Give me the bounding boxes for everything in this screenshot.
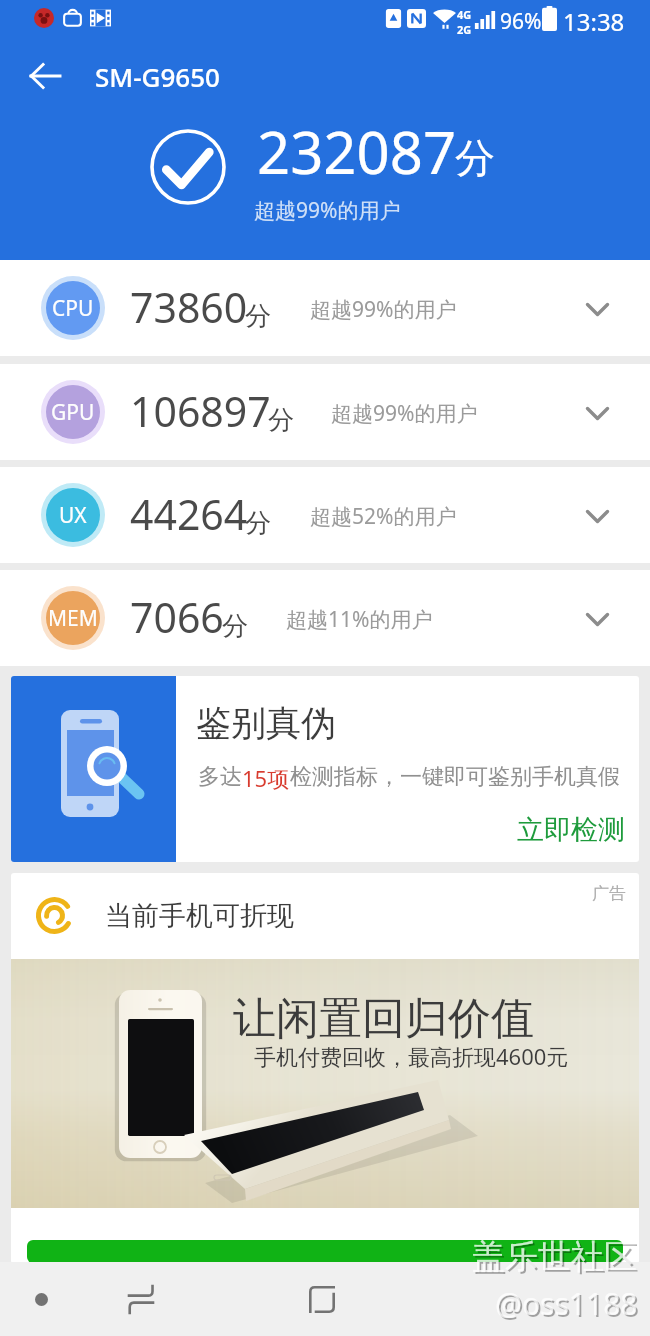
staticText: 多达 [198,763,242,791]
staticText: CPU [52,294,94,323]
button[interactable]: Recent apps [11,1269,71,1329]
staticText: 15项 [242,763,290,793]
staticText: 73860 [130,279,248,335]
staticText: 44264 [130,486,248,542]
staticText: MEM [48,604,98,633]
staticText: 232087 [257,112,457,191]
button[interactable]: Home [292,1269,352,1329]
staticText: 2G [457,22,472,37]
staticText: 分 [268,404,294,437]
staticText: 7066 [130,589,224,645]
staticText: 当前手机可折现 [105,899,294,933]
staticText: 立即检测 [517,813,625,847]
staticText: 4G [457,7,472,22]
staticText: 分 [245,507,271,540]
staticText: 13:38 [563,5,625,38]
staticText: 检测指标，一键即可鉴别手机真假 [290,763,620,791]
button[interactable]: GPU [0,364,650,460]
staticText: 超越99%的用户 [310,295,457,324]
button[interactable]: UX [0,467,650,563]
staticText: 盖乐世社区 [472,1236,637,1278]
staticText: 分 [455,133,495,183]
button[interactable]: MEM [0,570,650,666]
staticText: GPU [51,398,95,427]
staticText: 盖乐世社区 [474,1238,639,1280]
button[interactable]: 鉴别真伪 [11,676,639,862]
staticText: 鉴别真伪 [196,701,336,745]
button[interactable]: Back [22,53,68,99]
staticText: 广告 [592,883,626,904]
staticText: UX [59,501,87,530]
staticText: 超越99%的用户 [331,399,478,428]
button[interactable] [27,1240,623,1263]
other: Expand [586,510,609,523]
staticText: @oss1188 [495,1283,638,1324]
staticText: 96% [500,7,542,36]
button[interactable]: 当前手机可折现 [11,873,639,1263]
button[interactable]: Back [111,1269,171,1329]
staticText: 超越52%的用户 [310,502,457,531]
staticText: SM-G9650 [95,59,220,94]
staticText: @oss1188 [497,1285,640,1326]
other: Expand [586,613,609,626]
other: Expand [586,303,609,316]
staticText: 分 [245,300,271,333]
staticText: 超越11%的用户 [286,605,433,634]
staticText: 让闲置回归价值 [233,992,534,1046]
staticText: 超越99%的用户 [254,196,401,225]
staticText: 手机付费回收，最高折现4600元 [254,1041,569,1071]
button[interactable]: CPU [0,260,650,356]
other: Expand [586,407,609,420]
staticText: 分 [222,610,248,643]
staticText: 106897 [130,383,271,439]
